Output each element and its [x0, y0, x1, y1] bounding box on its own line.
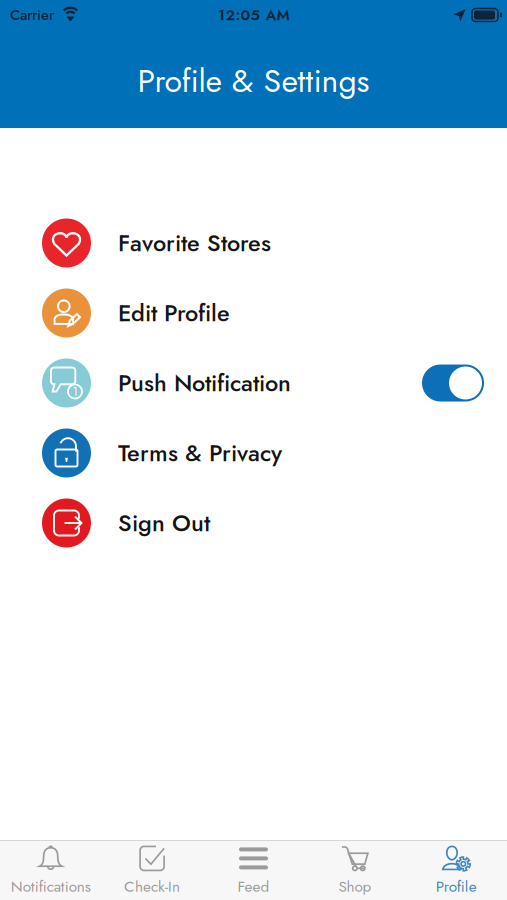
button[interactable]: Terms & Privacy — [0, 418, 507, 488]
staticText: Carrier — [10, 4, 54, 26]
staticText: Push Notification — [118, 366, 291, 400]
staticText: Favorite Stores — [118, 226, 271, 260]
button[interactable]: Edit Profile — [0, 278, 507, 348]
staticText: 1 — [72, 383, 77, 400]
staticText: Terms & Privacy — [118, 436, 282, 470]
staticText: Profile — [436, 875, 477, 898]
button[interactable]: Feed — [203, 837, 304, 900]
button[interactable]: Shop — [304, 837, 406, 900]
staticText: Edit Profile — [118, 296, 230, 330]
staticText: Sign Out — [118, 506, 210, 540]
staticText: 12:05 AM — [217, 4, 289, 26]
button[interactable]: Profile — [406, 837, 507, 900]
staticText: Profile & Settings — [137, 58, 369, 104]
button[interactable]: 1 — [0, 348, 507, 418]
staticText: Shop — [338, 875, 371, 898]
staticText: Notifications — [11, 875, 91, 898]
staticText: Check-In — [124, 875, 180, 898]
button[interactable]: Favorite Stores — [0, 208, 507, 278]
button[interactable]: Sign Out — [0, 488, 507, 558]
button[interactable]: Notifications — [0, 837, 101, 900]
staticText: Feed — [237, 875, 269, 898]
button[interactable]: Check-In — [101, 837, 203, 900]
